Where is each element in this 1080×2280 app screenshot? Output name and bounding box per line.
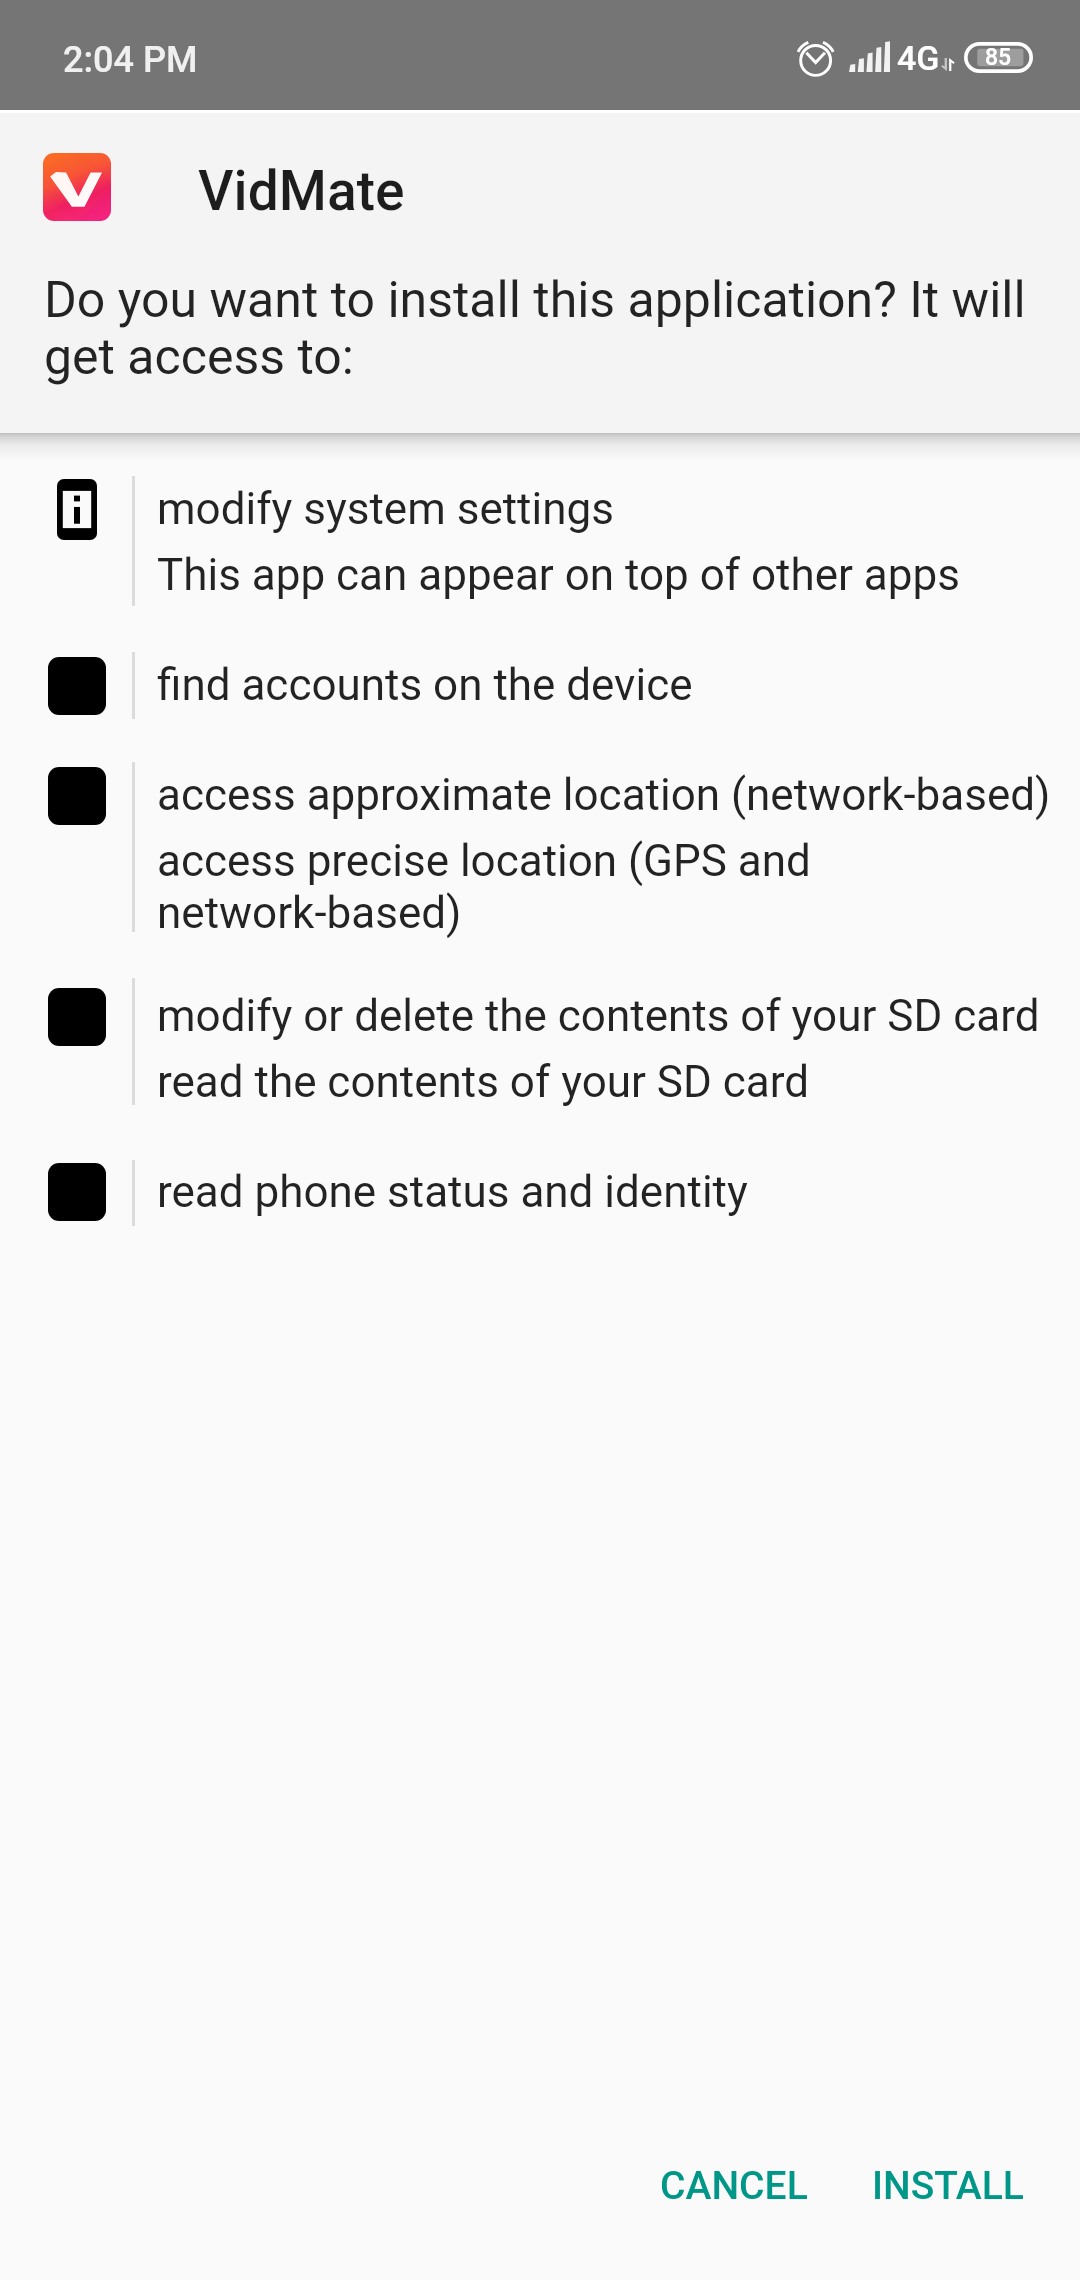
- staticText: 85: [985, 44, 1012, 71]
- staticText: INSTALL: [872, 2163, 1024, 2209]
- button[interactable]: INSTALL: [837, 2139, 1059, 2233]
- other: Alarm: [798, 39, 834, 75]
- button[interactable]: Permission group icon: [0, 640, 1080, 731]
- staticText: This app can appear on top of other apps: [157, 549, 960, 601]
- other: Permission group icon: [48, 657, 106, 715]
- staticText: access precise location (GPS and network…: [157, 835, 811, 939]
- other: Permission group icon: [48, 988, 106, 1046]
- staticText: find accounts on the device: [157, 659, 693, 711]
- staticText: modify or delete the contents of your SD…: [157, 990, 1040, 1042]
- other: Mobile data activity: [941, 58, 955, 71]
- button[interactable]: CANCEL: [625, 2139, 843, 2233]
- button[interactable]: Permission group icon: [0, 966, 1080, 1117]
- other: Mobile signal strength: [849, 42, 890, 72]
- staticText: VidMate: [198, 159, 405, 223]
- button[interactable]: Permission group icon: [0, 464, 1080, 618]
- other: Permission group icon: [48, 767, 106, 825]
- staticText: read the contents of your SD card: [157, 1056, 810, 1108]
- staticText: access approximate location (network-bas…: [157, 769, 1051, 821]
- staticText: modify system settings: [157, 483, 614, 535]
- button[interactable]: Permission group icon: [0, 1148, 1080, 1238]
- other: Permission group icon: [48, 1163, 106, 1221]
- button[interactable]: Permission group icon: [0, 750, 1080, 944]
- staticText: read phone status and identity: [157, 1166, 748, 1218]
- staticText: 2:04 PM: [63, 39, 198, 81]
- other: Permission group icon: [48, 479, 88, 540]
- staticText: Do you want to install this application?…: [44, 272, 1034, 386]
- staticText: CANCEL: [660, 2163, 808, 2209]
- other: Battery 85 percent: [964, 42, 1033, 73]
- other: VidMate app icon: [43, 153, 111, 221]
- staticText: 4G: [897, 38, 940, 78]
